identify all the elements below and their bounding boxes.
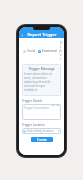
staticText: Report Trigger bbox=[27, 32, 57, 38]
staticText: Trigger Location bbox=[22, 123, 45, 127]
button[interactable]: Create bbox=[31, 137, 53, 142]
staticText: Trigger Details bbox=[22, 99, 43, 103]
button[interactable]: Other bbox=[58, 40, 61, 62]
button[interactable]: Select likely location bbox=[22, 128, 61, 134]
button[interactable]: Take photo bbox=[56, 104, 60, 106]
staticText: Emotional bbox=[42, 49, 57, 53]
button[interactable]: Social bbox=[22, 48, 37, 54]
staticText: Trigger Message bbox=[24, 66, 59, 70]
button[interactable]: Trigger Description bbox=[22, 104, 61, 120]
staticText: Social bbox=[27, 49, 36, 53]
staticText: Lorem ipsum dolor sit amet, consectetur … bbox=[24, 72, 59, 92]
staticText: Create bbox=[37, 138, 47, 142]
staticText: Trigger Description bbox=[24, 106, 50, 110]
button[interactable]: Emotional bbox=[37, 48, 58, 54]
staticText: Select likely location bbox=[27, 129, 58, 133]
button[interactable]: Back bbox=[19, 32, 25, 38]
button[interactable]: Record audio bbox=[51, 104, 55, 106]
